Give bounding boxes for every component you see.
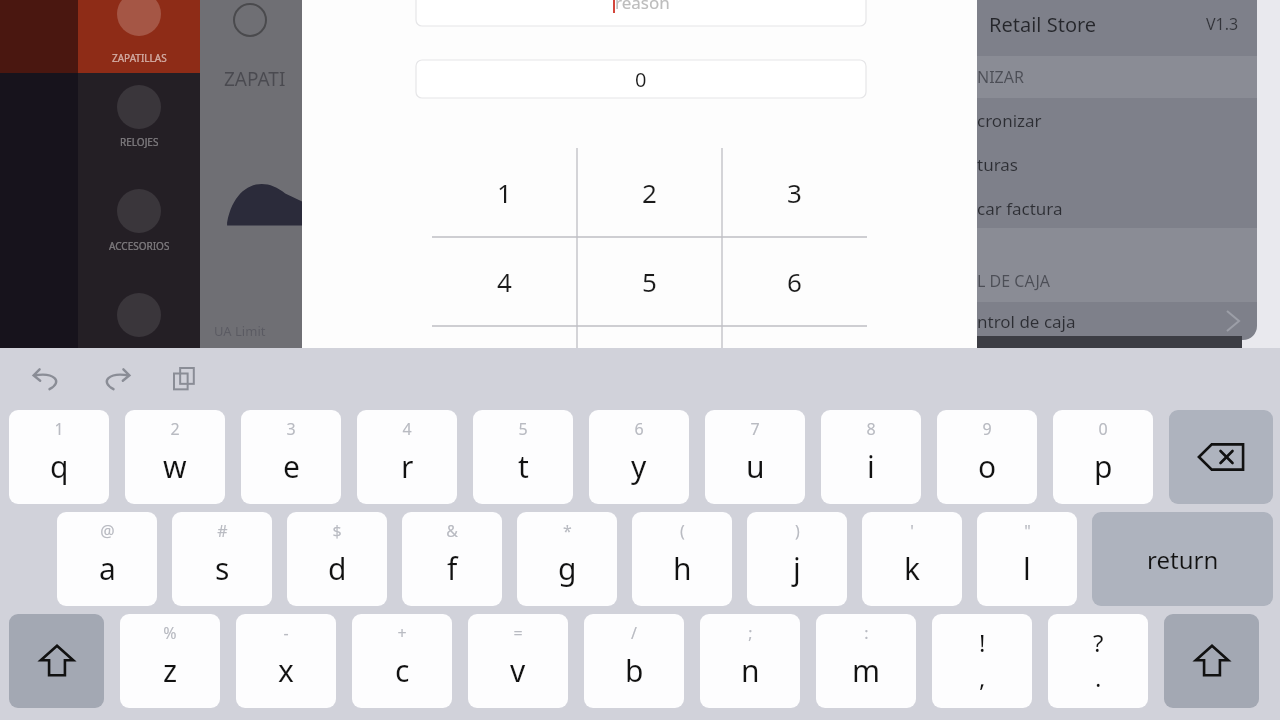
button[interactable]: 2: [577, 148, 722, 237]
staticText: 0: [635, 66, 647, 93]
button[interactable]: Shift: [1164, 614, 1259, 708]
staticText: s: [215, 548, 230, 589]
button[interactable]: 5: [577, 237, 722, 326]
button[interactable]: [432, 326, 577, 415]
button[interactable]: [78, 281, 200, 385]
staticText: ?: [1093, 626, 1104, 659]
button[interactable]: +: [352, 614, 452, 708]
button[interactable]: [722, 326, 867, 415]
button[interactable]: Shift: [9, 614, 104, 708]
staticText: 5: [642, 264, 657, 299]
staticText: ntrol de caja: [977, 310, 1076, 333]
staticText: ): [795, 520, 800, 542]
button[interactable]: Backspace: [1169, 410, 1273, 504]
staticText: +: [397, 622, 407, 644]
button[interactable]: ": [977, 512, 1077, 606]
staticText: =: [513, 622, 523, 644]
button[interactable]: ?: [1048, 614, 1148, 708]
staticText: 6: [787, 264, 802, 299]
button[interactable]: 6: [722, 237, 867, 326]
button[interactable]: %: [120, 614, 220, 708]
staticText: 3: [286, 418, 296, 440]
staticText: o: [978, 446, 997, 487]
button[interactable]: 6: [589, 410, 689, 504]
staticText: V1.3: [1206, 13, 1239, 35]
staticText: 0: [1098, 418, 1108, 440]
button[interactable]: =: [468, 614, 568, 708]
button[interactable]: (: [632, 512, 732, 606]
button[interactable]: @: [57, 512, 157, 606]
button[interactable]: cronizar: [977, 98, 1257, 142]
button[interactable]: ACCESORIOS: [78, 177, 200, 281]
button[interactable]: #: [172, 512, 272, 606]
button[interactable]: 1: [9, 410, 109, 504]
staticText: !: [979, 626, 986, 659]
button[interactable]: [577, 326, 722, 415]
staticText: return: [1147, 543, 1219, 576]
staticText: ': [910, 520, 914, 542]
staticText: 1: [497, 175, 512, 210]
button[interactable]: 3: [722, 148, 867, 237]
button[interactable]: 4: [357, 410, 457, 504]
staticText: reason: [615, 0, 670, 14]
button[interactable]: Paste: [163, 357, 207, 401]
staticText: %: [163, 622, 177, 644]
button[interactable]: ZAPATILLAS: [78, 0, 200, 73]
button[interactable]: $: [287, 512, 387, 606]
button[interactable]: reason: [416, 0, 866, 26]
button[interactable]: 0: [1053, 410, 1153, 504]
button[interactable]: ntrol de caja: [977, 302, 1257, 340]
staticText: RELOJES: [120, 135, 159, 149]
button[interactable]: 1: [432, 148, 577, 237]
button[interactable]: 3: [241, 410, 341, 504]
staticText: j: [793, 548, 801, 589]
button[interactable]: ;: [700, 614, 800, 708]
button[interactable]: &: [402, 512, 502, 606]
button[interactable]: Undo: [26, 357, 70, 401]
button[interactable]: *: [517, 512, 617, 606]
staticText: turas: [977, 153, 1019, 176]
staticText: .: [1095, 661, 1102, 694]
button[interactable]: 4: [432, 237, 577, 326]
staticText: u: [746, 446, 765, 487]
staticText: 8: [866, 418, 876, 440]
staticText: i: [867, 446, 875, 487]
staticText: *: [563, 520, 572, 542]
staticText: 1: [54, 418, 64, 440]
button[interactable]: 5: [473, 410, 573, 504]
button[interactable]: 8: [821, 410, 921, 504]
button[interactable]: 7: [705, 410, 805, 504]
staticText: 4: [497, 264, 512, 299]
staticText: k: [904, 548, 921, 589]
staticText: 3: [787, 175, 802, 210]
button[interactable]: /: [584, 614, 684, 708]
button[interactable]: 0: [416, 60, 866, 98]
staticText: l: [1023, 548, 1031, 589]
staticText: 5: [518, 418, 528, 440]
button[interactable]: 2: [125, 410, 225, 504]
staticText: :: [864, 622, 869, 644]
button[interactable]: ': [862, 512, 962, 606]
staticText: 7: [750, 418, 760, 440]
staticText: w: [163, 446, 187, 487]
button[interactable]: car factura: [977, 186, 1257, 230]
staticText: #: [217, 520, 228, 542]
staticText: ;: [748, 622, 753, 644]
button[interactable]: return: [1092, 512, 1273, 606]
staticText: e: [283, 446, 300, 487]
button[interactable]: -: [236, 614, 336, 708]
staticText: ZAPATILLAS: [112, 51, 167, 65]
button[interactable]: 9: [937, 410, 1037, 504]
staticText: m: [852, 650, 881, 691]
button[interactable]: :: [816, 614, 916, 708]
staticText: ,: [979, 661, 986, 694]
button[interactable]: Redo: [93, 357, 137, 401]
button[interactable]: turas: [977, 142, 1257, 186]
button[interactable]: RELOJES: [78, 73, 200, 177]
button[interactable]: !: [932, 614, 1032, 708]
button[interactable]: ): [747, 512, 847, 606]
staticText: ZAPATI: [224, 66, 286, 92]
staticText: NIZAR: [977, 66, 1024, 88]
staticText: v: [510, 650, 526, 691]
staticText: (: [680, 520, 685, 542]
